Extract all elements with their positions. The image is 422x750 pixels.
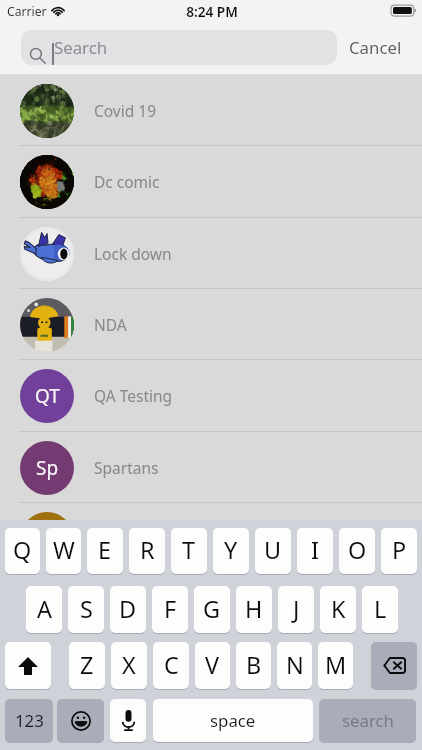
staticText: Carrier xyxy=(7,3,47,20)
button[interactable]: T xyxy=(171,528,207,574)
staticText: R xyxy=(140,534,155,566)
staticText: J xyxy=(293,593,300,625)
button[interactable]: X xyxy=(111,642,147,689)
staticText: Sunset xyxy=(94,528,144,549)
staticText: A xyxy=(37,593,52,625)
staticText: Sp xyxy=(36,455,59,481)
button[interactable]: I xyxy=(297,528,333,574)
button[interactable]: S xyxy=(68,586,104,633)
button[interactable]: N xyxy=(277,642,312,689)
button[interactable]: Dictation xyxy=(110,699,146,742)
button[interactable]: U xyxy=(255,528,291,574)
button[interactable]: QT xyxy=(0,360,422,431)
staticText: V xyxy=(205,649,220,681)
button[interactable]: M xyxy=(318,642,353,689)
staticText: Q xyxy=(13,534,32,566)
staticText: Spartans xyxy=(94,457,159,478)
button[interactable]: Y xyxy=(213,528,249,574)
button[interactable]: Sp xyxy=(0,432,422,503)
staticText: NDA xyxy=(94,314,127,335)
staticText: W xyxy=(53,534,75,566)
button[interactable]: Emoji xyxy=(57,699,104,742)
button[interactable]: W xyxy=(46,528,81,574)
button[interactable]: K xyxy=(320,586,356,633)
button[interactable]: Cancel xyxy=(337,30,422,65)
staticText: K xyxy=(331,593,346,625)
staticText: QA Testing xyxy=(94,385,173,406)
button[interactable]: Dc comic xyxy=(0,146,422,217)
button[interactable]: Backspace xyxy=(371,642,417,689)
button[interactable]: C xyxy=(153,642,189,689)
button[interactable]: Lock down xyxy=(0,218,422,289)
button[interactable]: V xyxy=(195,642,230,689)
button[interactable]: Q xyxy=(5,528,40,574)
button[interactable]: Search xyxy=(21,30,337,65)
button[interactable]: Shift xyxy=(5,642,51,689)
button[interactable]: D xyxy=(110,586,146,633)
staticText: space xyxy=(210,709,256,732)
button[interactable]: J xyxy=(278,586,314,633)
staticText: C xyxy=(164,649,179,681)
staticText: D xyxy=(119,593,137,625)
staticText: O xyxy=(348,534,367,566)
staticText: B xyxy=(246,649,262,681)
staticText: I xyxy=(311,534,319,566)
staticText: X xyxy=(122,649,136,681)
button[interactable]: P xyxy=(381,528,417,574)
button[interactable]: F xyxy=(152,586,188,633)
button[interactable]: E xyxy=(87,528,123,574)
staticText: T xyxy=(182,534,196,566)
staticText: P xyxy=(392,534,407,566)
button[interactable]: NDA xyxy=(0,289,422,360)
staticText: G xyxy=(203,593,221,625)
button[interactable]: R xyxy=(129,528,165,574)
button[interactable]: O xyxy=(339,528,375,574)
button[interactable]: space xyxy=(153,699,313,742)
button[interactable]: A xyxy=(26,586,62,633)
button[interactable]: H xyxy=(236,586,272,633)
staticText: 123 xyxy=(15,709,44,732)
staticText: U xyxy=(264,534,282,566)
staticText: E xyxy=(98,534,112,566)
staticText: Cancel xyxy=(349,36,402,59)
button[interactable]: Covid 19 xyxy=(0,75,422,146)
button[interactable]: search xyxy=(319,699,416,742)
staticText: Su xyxy=(36,526,59,552)
button[interactable]: B xyxy=(236,642,271,689)
staticText: Y xyxy=(224,534,238,566)
staticText: search xyxy=(342,709,394,732)
staticText: Z xyxy=(80,649,94,681)
staticText: S xyxy=(80,593,93,625)
button[interactable]: Su xyxy=(0,503,422,574)
button[interactable]: L xyxy=(362,586,398,633)
staticText: Dc comic xyxy=(94,171,160,192)
button[interactable]: Z xyxy=(69,642,105,689)
staticText: Search xyxy=(54,36,108,59)
staticText: 8:24 PM xyxy=(1,2,422,21)
staticText: H xyxy=(245,593,263,625)
button[interactable]: G xyxy=(194,586,230,633)
staticText: Lock down xyxy=(94,243,172,264)
staticText: L xyxy=(374,593,387,625)
staticText: QT xyxy=(35,383,60,409)
staticText: N xyxy=(286,649,304,681)
staticText: M xyxy=(325,649,347,681)
staticText: F xyxy=(164,593,177,625)
staticText: Covid 19 xyxy=(94,100,157,121)
button[interactable]: 123 xyxy=(5,699,53,742)
